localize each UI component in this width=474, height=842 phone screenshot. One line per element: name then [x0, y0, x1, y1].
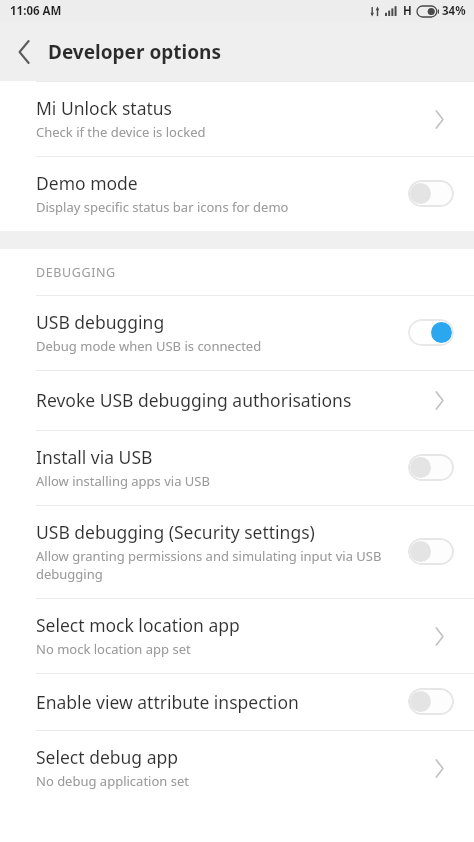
button[interactable]: Back — [0, 22, 48, 81]
button[interactable]: USB debugging (Security settings) — [0, 506, 474, 598]
staticText: Revoke USB debugging authorisations — [36, 388, 352, 412]
button[interactable]: USB debugging — [0, 296, 474, 370]
staticText: Mi Unlock status — [36, 96, 172, 120]
staticText: No mock location app set — [36, 640, 191, 658]
button[interactable]: Demo mode — [0, 157, 474, 231]
staticText: Select debug app — [36, 745, 178, 769]
button[interactable]: Select mock location app — [0, 599, 474, 673]
staticText: No debug application set — [36, 772, 189, 790]
staticText: Allow installing apps via USB — [36, 472, 210, 490]
other: Open — [424, 385, 454, 415]
staticText: Demo mode — [36, 171, 138, 195]
staticText: Check if the device is locked — [36, 123, 206, 141]
button[interactable]: Mi Unlock status — [0, 82, 474, 156]
other: Open — [424, 621, 454, 651]
button[interactable]: Revoke USB debugging authorisations — [0, 371, 474, 430]
other: Open — [424, 753, 454, 783]
button[interactable]: Select debug app — [0, 731, 474, 805]
button[interactable]: Toggle on — [408, 319, 454, 346]
staticText: Debug mode when USB is connected — [36, 337, 262, 355]
staticText: 11:06 AM — [10, 3, 62, 19]
staticText: USB debugging (Security settings) — [36, 520, 315, 544]
button[interactable]: Install via USB — [0, 431, 474, 505]
staticText: Allow granting permissions and simulatin… — [36, 547, 400, 583]
button[interactable]: Toggle off — [408, 180, 454, 207]
staticText: Install via USB — [36, 445, 153, 469]
staticText: USB debugging — [36, 310, 165, 334]
button[interactable]: Enable view attribute inspection — [0, 674, 474, 730]
staticText: Enable view attribute inspection — [36, 690, 299, 714]
staticText: Select mock location app — [36, 613, 240, 637]
staticText: DEBUGGING — [36, 264, 116, 281]
staticText: Developer options — [48, 39, 221, 65]
staticText: H — [403, 3, 412, 19]
staticText: 34% — [442, 3, 466, 19]
button[interactable]: Toggle off — [408, 538, 454, 565]
staticText: Display specific status bar icons for de… — [36, 198, 289, 216]
button[interactable]: Toggle off — [408, 688, 454, 715]
other: Open — [424, 104, 454, 134]
button[interactable]: Toggle off — [408, 454, 454, 481]
